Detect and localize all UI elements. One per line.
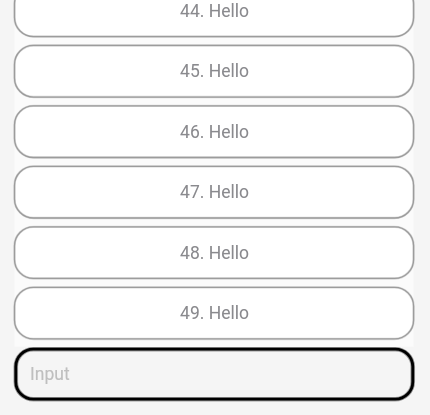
button[interactable]: Input [14,348,414,401]
staticText: 49. Hello [180,303,249,324]
staticText: 48. Hello [180,243,249,264]
button[interactable]: 45. Hello [15,45,414,97]
staticText: 46. Hello [180,122,249,143]
button[interactable]: 49. Hello [15,287,414,339]
button[interactable]: 46. Hello [15,106,414,158]
button[interactable]: 44. Hello [15,0,414,37]
staticText: 47. Hello [180,182,249,203]
staticText: 44. Hello [180,1,249,22]
staticText: 45. Hello [180,61,249,82]
staticText: Input [30,364,70,385]
button[interactable]: 48. Hello [15,227,414,279]
button[interactable]: 47. Hello [15,166,414,218]
